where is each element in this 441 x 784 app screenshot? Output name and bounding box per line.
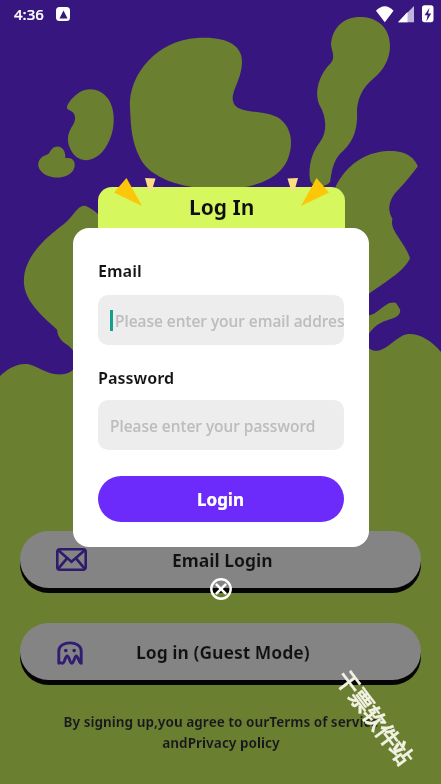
staticText: Login [197, 488, 245, 511]
button[interactable]: Close [210, 578, 232, 600]
staticText: 4:36 [14, 4, 44, 24]
button[interactable]: Log in (Guest Mode) [20, 623, 421, 680]
button[interactable]: Please enter your email address [98, 295, 344, 345]
staticText: Log in (Guest Mode) [136, 640, 310, 664]
staticText: Please enter your email address [115, 310, 344, 331]
staticText: Log In [189, 193, 255, 222]
staticText: 干票软件站 [330, 667, 418, 771]
other: Log in (Guest Mode) [56, 638, 84, 666]
staticText: Please enter your password [110, 415, 316, 436]
staticText: Email [98, 260, 142, 282]
button[interactable]: Email Login [20, 531, 421, 588]
other: Email Login [56, 548, 87, 571]
button[interactable]: Login [98, 476, 344, 522]
staticText: By signing up,you agree to ourTerms of s… [63, 713, 379, 752]
button[interactable]: Please enter your password [98, 400, 344, 450]
staticText: Email Login [172, 548, 273, 572]
staticText: Password [98, 367, 175, 389]
